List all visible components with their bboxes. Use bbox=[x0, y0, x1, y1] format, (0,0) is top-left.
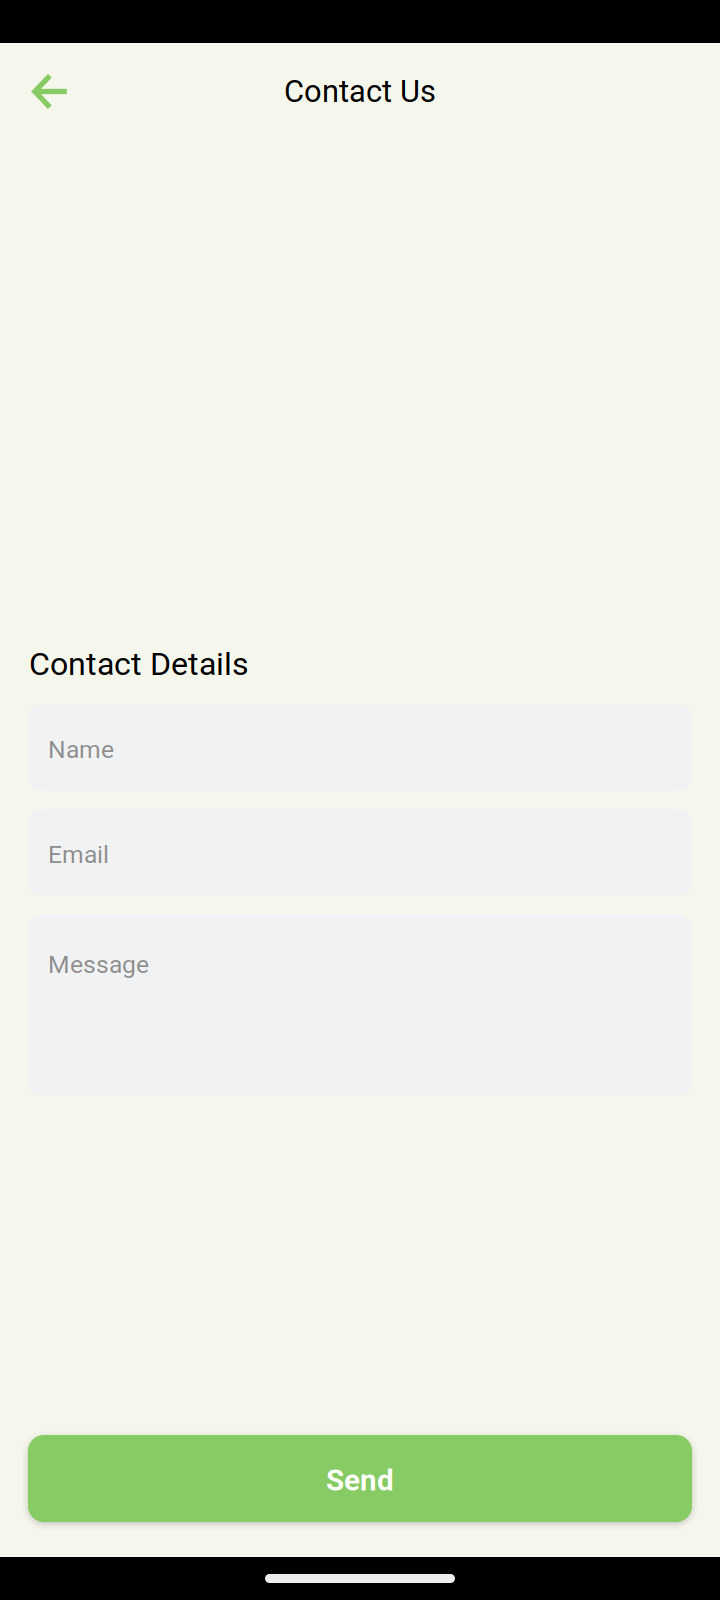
button[interactable]: Email bbox=[28, 809, 692, 896]
button[interactable]: Back bbox=[25, 67, 73, 115]
button[interactable]: Message bbox=[28, 914, 692, 1096]
staticText: Contact Details bbox=[29, 645, 249, 683]
staticText: Name bbox=[48, 735, 114, 764]
button[interactable]: Send bbox=[28, 1435, 692, 1522]
staticText: Email bbox=[48, 840, 109, 869]
button[interactable]: Name bbox=[28, 704, 692, 791]
staticText: Message bbox=[48, 950, 149, 979]
staticText: Send bbox=[326, 1463, 394, 1498]
staticText: Contact Us bbox=[284, 73, 436, 110]
